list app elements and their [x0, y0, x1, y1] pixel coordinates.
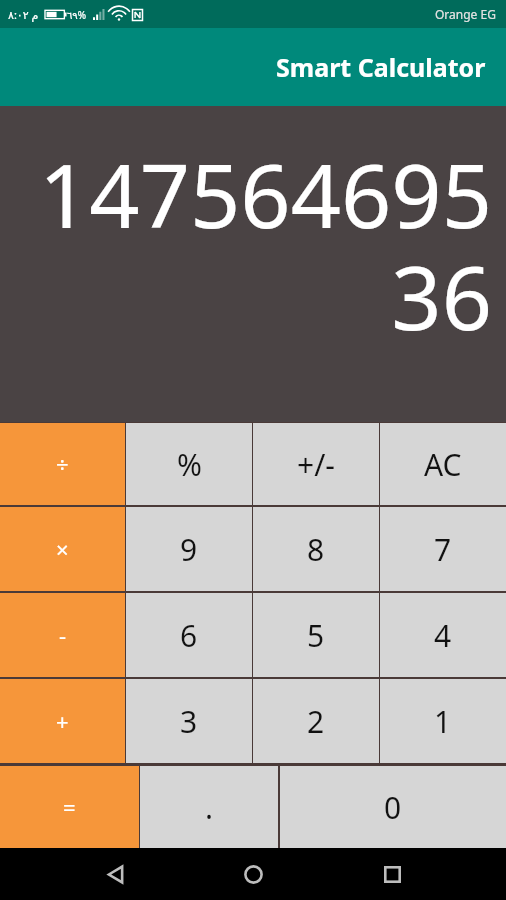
button[interactable]: 8	[253, 507, 379, 591]
staticText: 4	[434, 615, 452, 656]
button[interactable]: +/-	[253, 423, 379, 505]
staticText: +	[56, 706, 69, 736]
staticText: 7	[434, 529, 452, 570]
staticText: 14756469536	[14, 134, 492, 356]
button[interactable]: 4	[380, 593, 506, 677]
staticText: +/-	[297, 444, 335, 485]
button[interactable]: 0	[280, 766, 506, 848]
button[interactable]: Recents	[368, 850, 416, 898]
staticText: 1	[434, 701, 452, 742]
button[interactable]: Back	[91, 850, 139, 898]
button[interactable]: 7	[380, 507, 506, 591]
button[interactable]: =	[0, 766, 139, 848]
staticText: 0	[384, 787, 402, 828]
staticText: %	[177, 444, 202, 485]
staticText: ÷	[56, 449, 69, 479]
staticText: ×	[56, 534, 69, 564]
button[interactable]: 9	[126, 507, 252, 591]
staticText: 8	[307, 529, 325, 570]
staticText: ٦٩%	[67, 8, 87, 22]
staticText: =	[63, 792, 76, 822]
button[interactable]: .	[140, 766, 278, 848]
button[interactable]: AC	[380, 423, 506, 505]
staticText: AC	[424, 444, 462, 485]
button[interactable]: Home	[229, 850, 277, 898]
button[interactable]: 6	[126, 593, 252, 677]
button[interactable]: %	[126, 423, 252, 505]
button[interactable]: -	[0, 593, 125, 677]
staticText: 5	[307, 615, 325, 656]
button[interactable]: ÷	[0, 423, 125, 505]
button[interactable]: 5	[253, 593, 379, 677]
staticText: Smart Calculator	[276, 50, 486, 84]
staticText: م ٨:٠٢	[8, 7, 39, 22]
button[interactable]: 2	[253, 679, 379, 763]
staticText: -	[59, 620, 67, 650]
staticText: .	[205, 787, 214, 828]
button[interactable]: 1	[380, 679, 506, 763]
button[interactable]: ×	[0, 507, 125, 591]
staticText: 9	[180, 529, 198, 570]
staticText: 3	[180, 701, 198, 742]
staticText: Orange EG	[435, 6, 496, 22]
staticText: 6	[180, 615, 198, 656]
staticText: 2	[307, 701, 325, 742]
button[interactable]: +	[0, 679, 125, 763]
button[interactable]: 3	[126, 679, 252, 763]
